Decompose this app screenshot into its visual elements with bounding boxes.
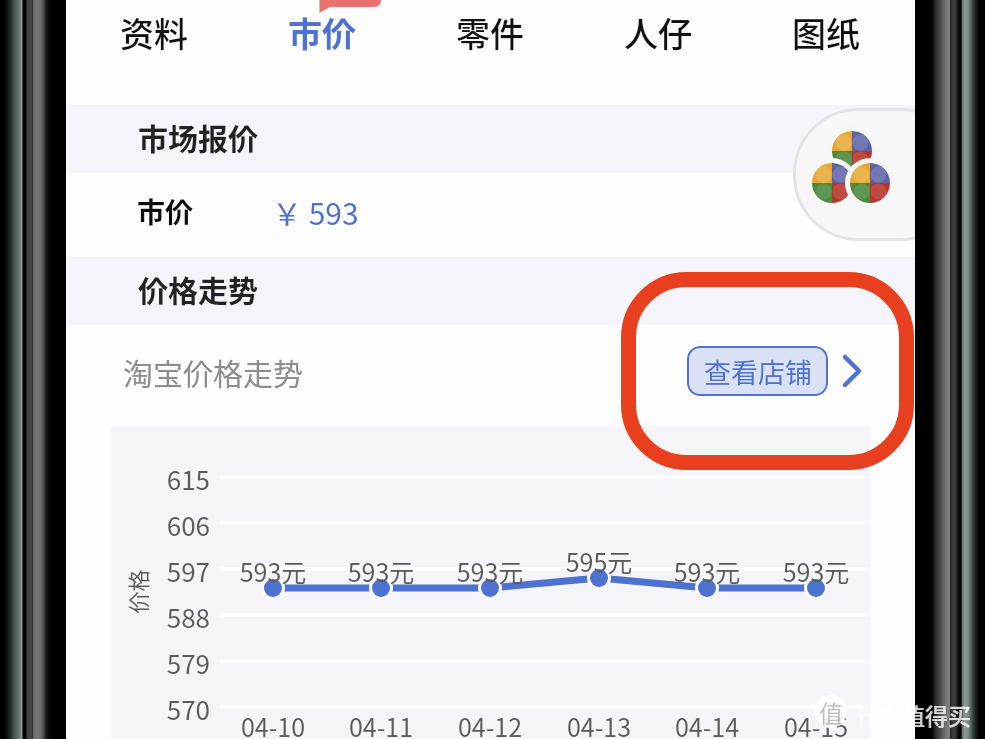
staticText: 597 xyxy=(148,552,210,590)
staticText: 价格走势 xyxy=(138,267,258,310)
staticText: 价格 xyxy=(120,568,152,613)
staticText: 593元 xyxy=(761,553,871,589)
button[interactable]: 零件 xyxy=(406,0,574,65)
staticText: 593元 xyxy=(652,553,762,589)
staticText: 市价 xyxy=(137,191,194,232)
staticText: 615 xyxy=(148,460,210,498)
staticText: 人仔 xyxy=(624,8,692,57)
staticText: 查看店铺 xyxy=(704,352,812,391)
button[interactable]: 图纸 xyxy=(742,0,910,65)
staticText: 市价 xyxy=(288,8,356,57)
staticText: 593元 xyxy=(435,553,545,589)
staticText: 市场报价 xyxy=(138,115,258,158)
staticText: 04-13 xyxy=(544,708,654,739)
button[interactable]: 市价 xyxy=(66,173,915,257)
staticText: 图纸 xyxy=(792,8,860,57)
staticText: 04-12 xyxy=(435,708,545,739)
staticText: 588 xyxy=(148,598,210,636)
staticText: 606 xyxy=(148,506,210,544)
button[interactable]: 查看店铺 xyxy=(687,346,828,396)
staticText: ￥ 593 xyxy=(272,190,359,233)
staticText: 值 xyxy=(819,695,843,728)
staticText: 570 xyxy=(148,690,210,728)
button[interactable]: 市价 xyxy=(238,0,406,65)
staticText: 595元 xyxy=(544,543,654,579)
button[interactable]: Brand logo xyxy=(793,108,923,241)
staticText: 零件 xyxy=(456,8,524,57)
staticText: 04-10 xyxy=(218,708,328,739)
staticText: 04-14 xyxy=(652,708,762,739)
button[interactable]: 人仔 xyxy=(574,0,742,65)
staticText: 04-11 xyxy=(326,708,436,739)
button[interactable]: Go to shop xyxy=(841,354,871,388)
staticText: 579 xyxy=(148,644,210,682)
staticText: 593元 xyxy=(218,553,328,589)
staticText: 04-15 xyxy=(761,708,871,739)
button[interactable]: 资料 xyxy=(69,0,238,65)
staticText: 淘宝价格走势 xyxy=(123,350,303,393)
staticText: 资料 xyxy=(120,8,188,57)
staticText: 593元 xyxy=(326,553,436,589)
staticText: 什么值得买 xyxy=(856,698,971,731)
